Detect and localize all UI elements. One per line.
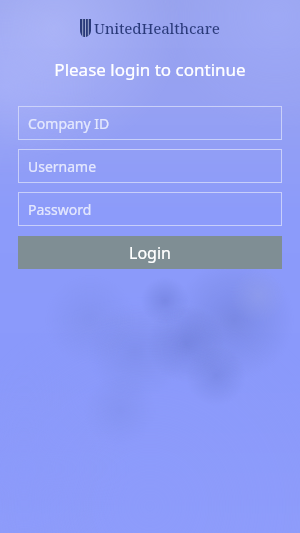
button[interactable]: Username xyxy=(18,149,282,183)
button[interactable]: Login xyxy=(18,236,282,269)
staticText: Username xyxy=(28,157,97,176)
staticText: Company ID xyxy=(28,114,110,133)
button[interactable]: Password xyxy=(18,192,282,226)
button[interactable]: Company ID xyxy=(18,106,282,140)
staticText: Please login to continue xyxy=(0,58,300,81)
staticText: Password xyxy=(28,200,92,219)
other: UnitedHealthcare logo xyxy=(80,19,91,37)
staticText: UnitedHealthcare xyxy=(94,18,220,38)
staticText: Login xyxy=(129,242,171,264)
